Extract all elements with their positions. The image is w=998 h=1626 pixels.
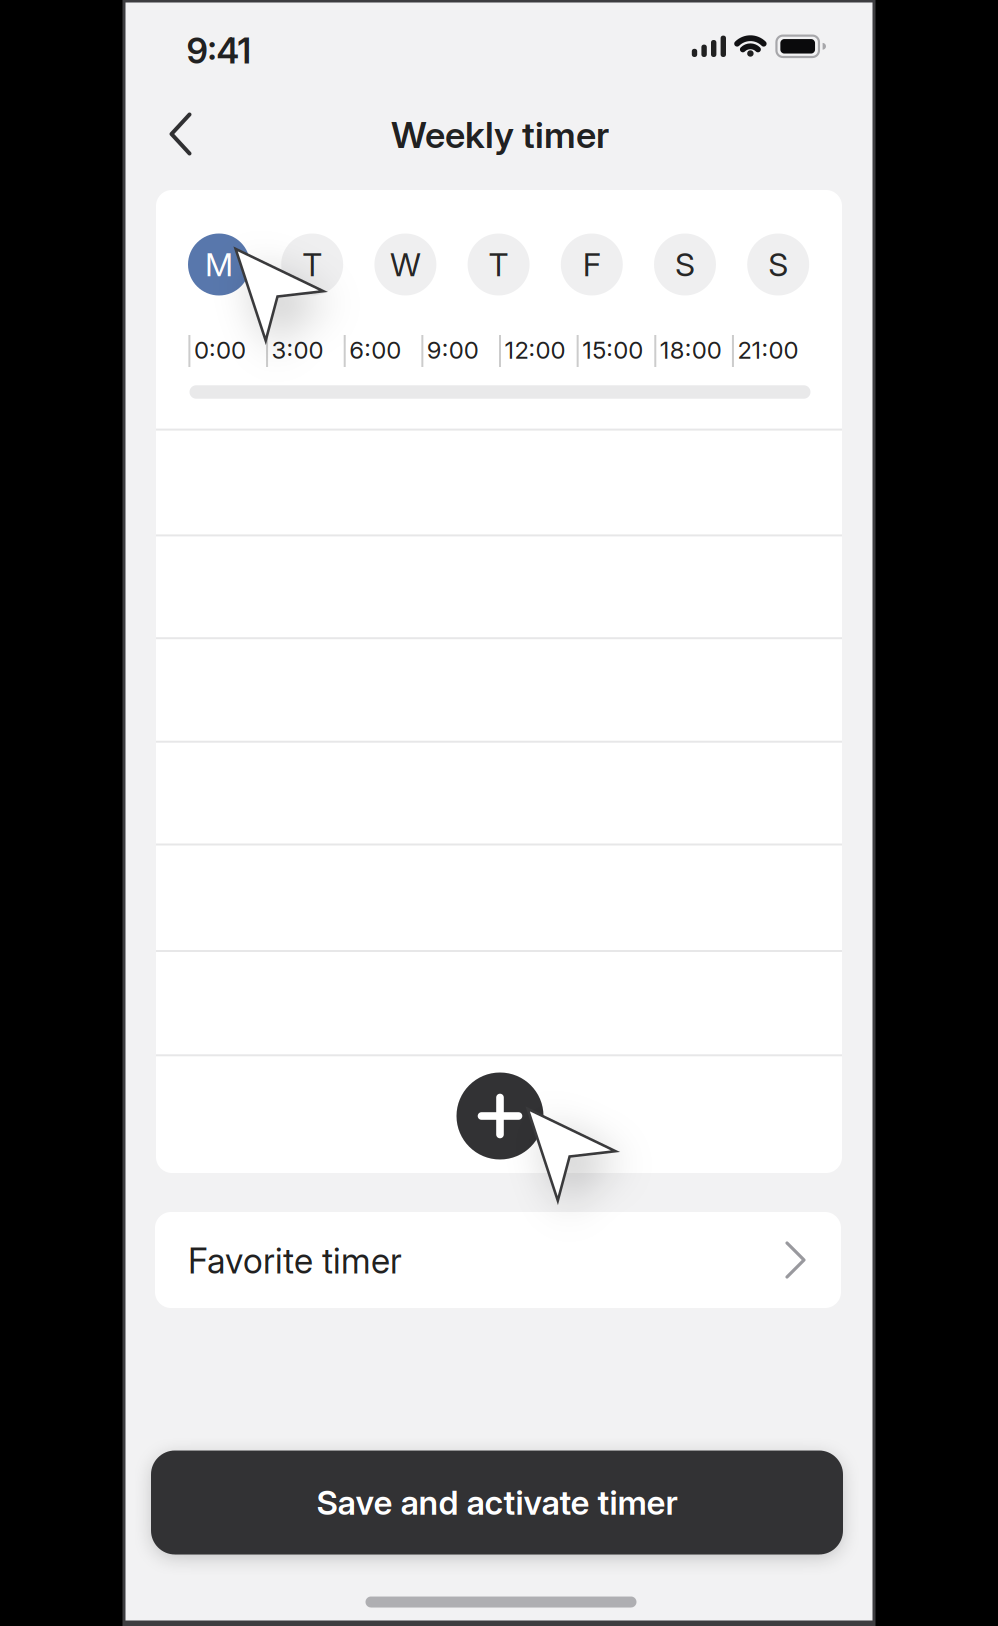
staticText: W <box>390 246 421 283</box>
button[interactable]: T <box>468 233 530 295</box>
button[interactable]: W <box>374 233 436 295</box>
staticText: 21:00 <box>737 336 798 364</box>
staticText: 9:41 <box>186 31 251 71</box>
button[interactable]: Favorite timer <box>155 1212 841 1308</box>
button[interactable]: Add timer <box>456 1072 543 1159</box>
staticText: 0:00 <box>194 336 246 364</box>
button[interactable]: S <box>747 233 809 295</box>
staticText: Weekly timer <box>391 114 609 156</box>
staticText: 15:00 <box>582 336 643 364</box>
staticText: S <box>768 246 788 283</box>
staticText: 6:00 <box>349 336 401 364</box>
button[interactable]: S <box>654 233 716 295</box>
staticText: Save and activate timer <box>316 1483 677 1522</box>
button[interactable]: T <box>281 233 343 295</box>
staticText: 12:00 <box>504 336 565 364</box>
staticText: 3:00 <box>272 336 324 364</box>
button[interactable]: Back <box>151 104 211 164</box>
staticText: Favorite timer <box>188 1241 402 1281</box>
staticText: 9:00 <box>427 336 479 364</box>
staticText: S <box>675 246 695 283</box>
button[interactable]: F <box>561 233 623 295</box>
staticText: T <box>489 246 509 283</box>
button[interactable]: Save and activate timer <box>151 1450 843 1554</box>
button[interactable]: M <box>188 233 250 295</box>
staticText: 18:00 <box>660 336 722 364</box>
staticText: M <box>205 246 233 283</box>
staticText: F <box>583 246 601 283</box>
staticText: T <box>302 246 322 283</box>
